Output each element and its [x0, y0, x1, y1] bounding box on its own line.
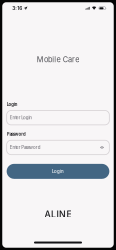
staticText: ALINE [45, 209, 71, 219]
staticText: Enter Password [10, 145, 41, 150]
staticText: Login [7, 102, 18, 107]
button[interactable]: Enter Password [7, 140, 109, 155]
staticText: Password [7, 132, 26, 137]
staticText: 3:16 [12, 5, 22, 11]
staticText: Login [52, 169, 64, 174]
button[interactable]: Login [7, 164, 109, 179]
button[interactable]: Enter Login [7, 110, 109, 125]
staticText: Enter Login [10, 115, 32, 120]
staticText: Mobile Care [37, 55, 79, 64]
